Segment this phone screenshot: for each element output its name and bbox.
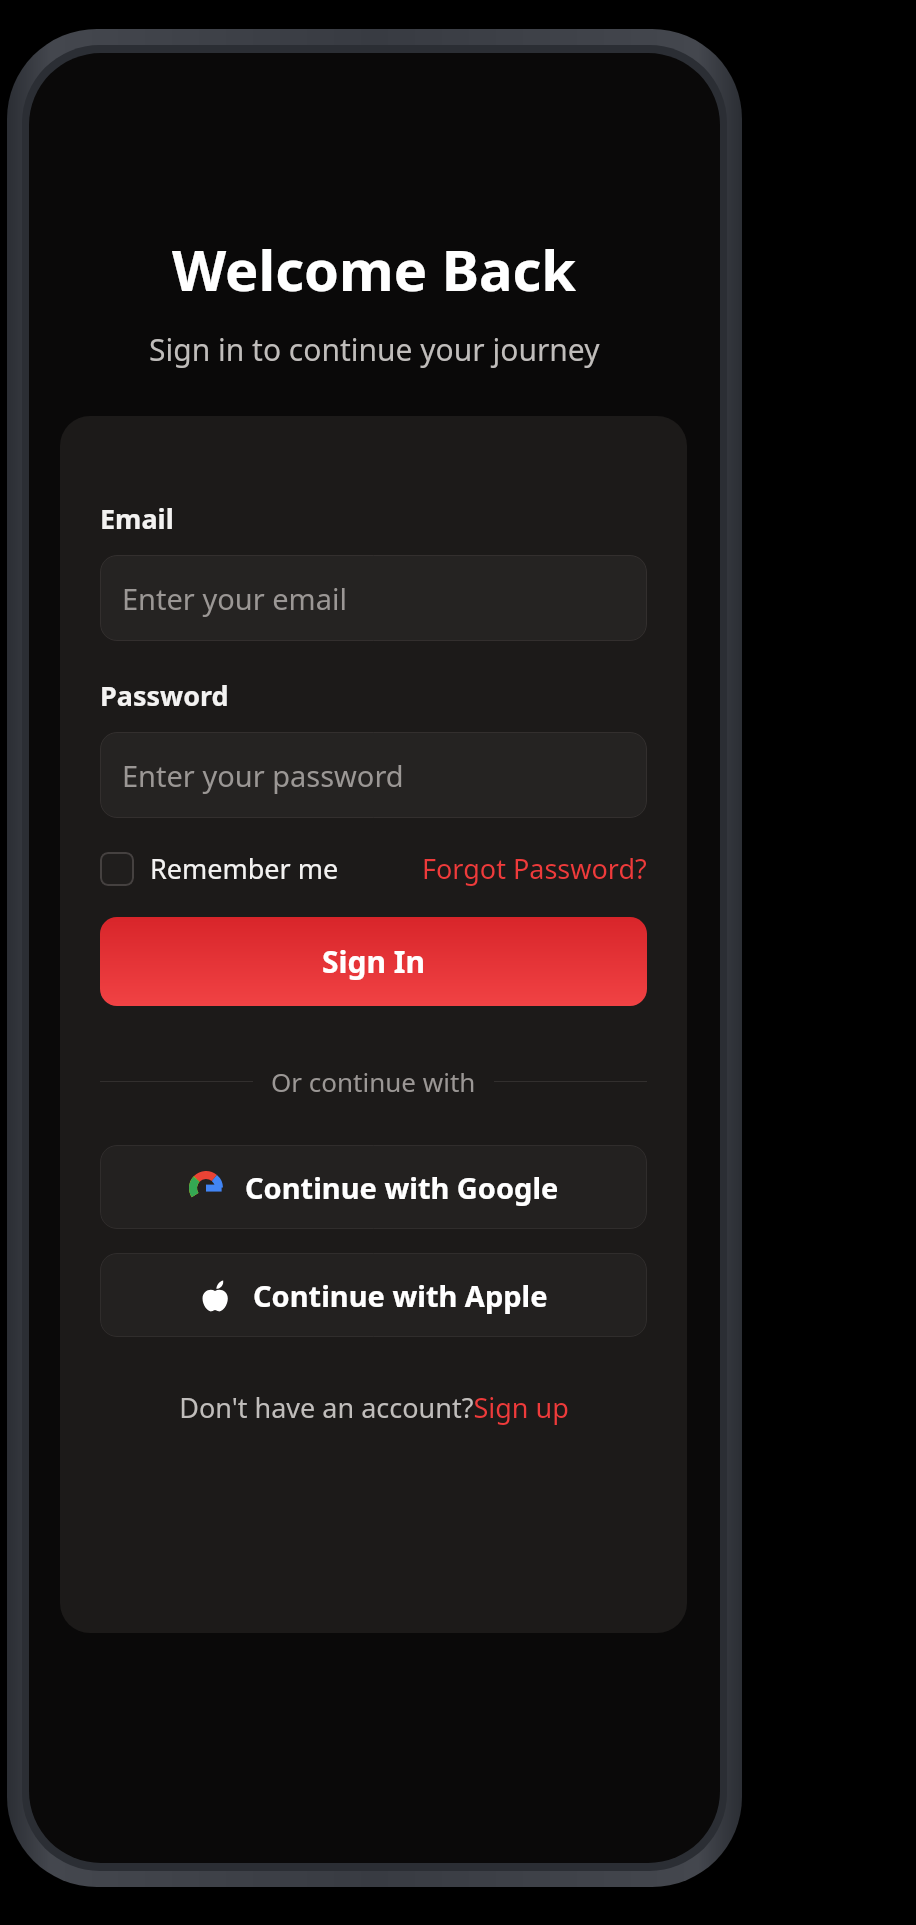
staticText: Welcome Back <box>172 231 577 307</box>
staticText: Don't have an account?Sign up <box>179 1389 569 1426</box>
staticText: Enter your email <box>122 579 347 618</box>
staticText: Continue with Google <box>245 1168 559 1207</box>
button[interactable]: Remember me <box>100 850 339 887</box>
other: Google <box>189 1171 223 1205</box>
staticText: Password <box>100 677 229 714</box>
staticText: Remember me <box>150 850 339 887</box>
button[interactable]: Forgot Password? <box>422 850 647 887</box>
staticText: Continue with Apple <box>253 1276 548 1315</box>
button[interactable]: Enter your password <box>100 732 647 818</box>
staticText: Enter your password <box>122 756 404 795</box>
button[interactable]: Google <box>100 1145 647 1229</box>
staticText: Sign in to continue your journey <box>149 329 600 370</box>
staticText: Sign In <box>322 941 425 982</box>
staticText: Email <box>100 500 174 537</box>
button[interactable]: Sign In <box>100 917 647 1006</box>
staticText: Forgot Password? <box>422 850 647 887</box>
staticText: Or continue with <box>271 1064 476 1099</box>
other: Apple <box>199 1280 231 1312</box>
button[interactable]: Enter your email <box>100 555 647 641</box>
button[interactable]: Apple <box>100 1253 647 1337</box>
button[interactable]: Don't have an account?Sign up <box>100 1389 647 1426</box>
